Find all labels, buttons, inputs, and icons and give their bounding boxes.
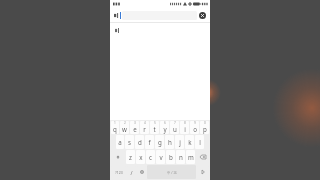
staticText: 6: [164, 121, 166, 125]
button[interactable]: Emoji: [137, 165, 146, 179]
button[interactable]: Clear: [112, 10, 208, 20]
staticText: n: [179, 153, 183, 161]
staticText: v: [159, 153, 163, 161]
button[interactable]: 2: [120, 121, 129, 134]
staticText: 2: [124, 121, 126, 125]
button[interactable]: a: [116, 135, 124, 149]
button[interactable]: Clear: [199, 12, 206, 19]
button[interactable]: m: [186, 150, 195, 164]
staticText: x: [139, 153, 143, 161]
button[interactable]: Shift: [111, 150, 125, 164]
staticText: o: [193, 125, 197, 133]
button[interactable]: 0: [200, 121, 209, 134]
button[interactable]: s: [125, 135, 134, 149]
staticText: y: [163, 125, 167, 133]
button[interactable]: 9: [190, 121, 199, 134]
staticText: 4: [144, 121, 146, 125]
button[interactable]: Space: [147, 165, 196, 179]
staticText: g: [158, 138, 162, 146]
button[interactable]: z: [126, 150, 135, 164]
staticText: ?123: [115, 170, 123, 175]
staticText: w: [122, 125, 127, 133]
button[interactable]: ?123: [111, 165, 126, 179]
button[interactable]: Enter: [197, 165, 209, 179]
staticText: u: [173, 125, 177, 133]
staticText: 7: [174, 121, 176, 125]
staticText: q: [113, 125, 117, 133]
button[interactable]: [110, 23, 210, 37]
staticText: d: [138, 138, 142, 146]
staticText: 1: [114, 121, 116, 125]
staticText: f: [148, 138, 151, 146]
button[interactable]: j: [175, 135, 184, 149]
button[interactable]: c: [146, 150, 155, 164]
button[interactable]: k: [185, 135, 194, 149]
staticText: 9: [194, 121, 196, 125]
staticText: 8: [184, 121, 186, 125]
staticText: i: [184, 125, 186, 133]
staticText: b: [169, 153, 173, 161]
button[interactable]: Backspace: [196, 150, 209, 164]
button[interactable]: f: [145, 135, 154, 149]
staticText: p: [203, 125, 207, 133]
staticText: 5: [154, 121, 156, 125]
staticText: 中 / 英: [167, 170, 177, 175]
staticText: 0: [204, 121, 206, 125]
button[interactable]: v: [156, 150, 165, 164]
staticText: l: [199, 138, 201, 146]
button[interactable]: l: [195, 135, 204, 149]
button[interactable]: 7: [170, 121, 179, 134]
button[interactable]: d: [135, 135, 144, 149]
staticText: /: [130, 169, 133, 176]
button[interactable]: 3: [130, 121, 139, 134]
button[interactable]: 1: [111, 121, 119, 134]
staticText: a: [118, 138, 122, 146]
button[interactable]: 8: [180, 121, 189, 134]
staticText: s: [128, 138, 131, 146]
staticText: j: [179, 138, 181, 146]
button[interactable]: h: [165, 135, 174, 149]
button[interactable]: /: [127, 165, 136, 179]
button[interactable]: 4: [140, 121, 149, 134]
staticText: r: [143, 125, 146, 133]
button[interactable]: 6: [160, 121, 169, 134]
staticText: z: [129, 153, 132, 161]
staticText: t: [153, 125, 156, 133]
staticText: h: [168, 138, 172, 146]
staticText: k: [188, 138, 192, 146]
button[interactable]: x: [136, 150, 145, 164]
staticText: 3: [134, 121, 136, 125]
staticText: e: [133, 125, 137, 133]
button[interactable]: b: [166, 150, 175, 164]
button[interactable]: g: [155, 135, 164, 149]
staticText: c: [149, 153, 152, 161]
staticText: m: [188, 153, 194, 161]
button[interactable]: 5: [150, 121, 159, 134]
button[interactable]: n: [176, 150, 185, 164]
